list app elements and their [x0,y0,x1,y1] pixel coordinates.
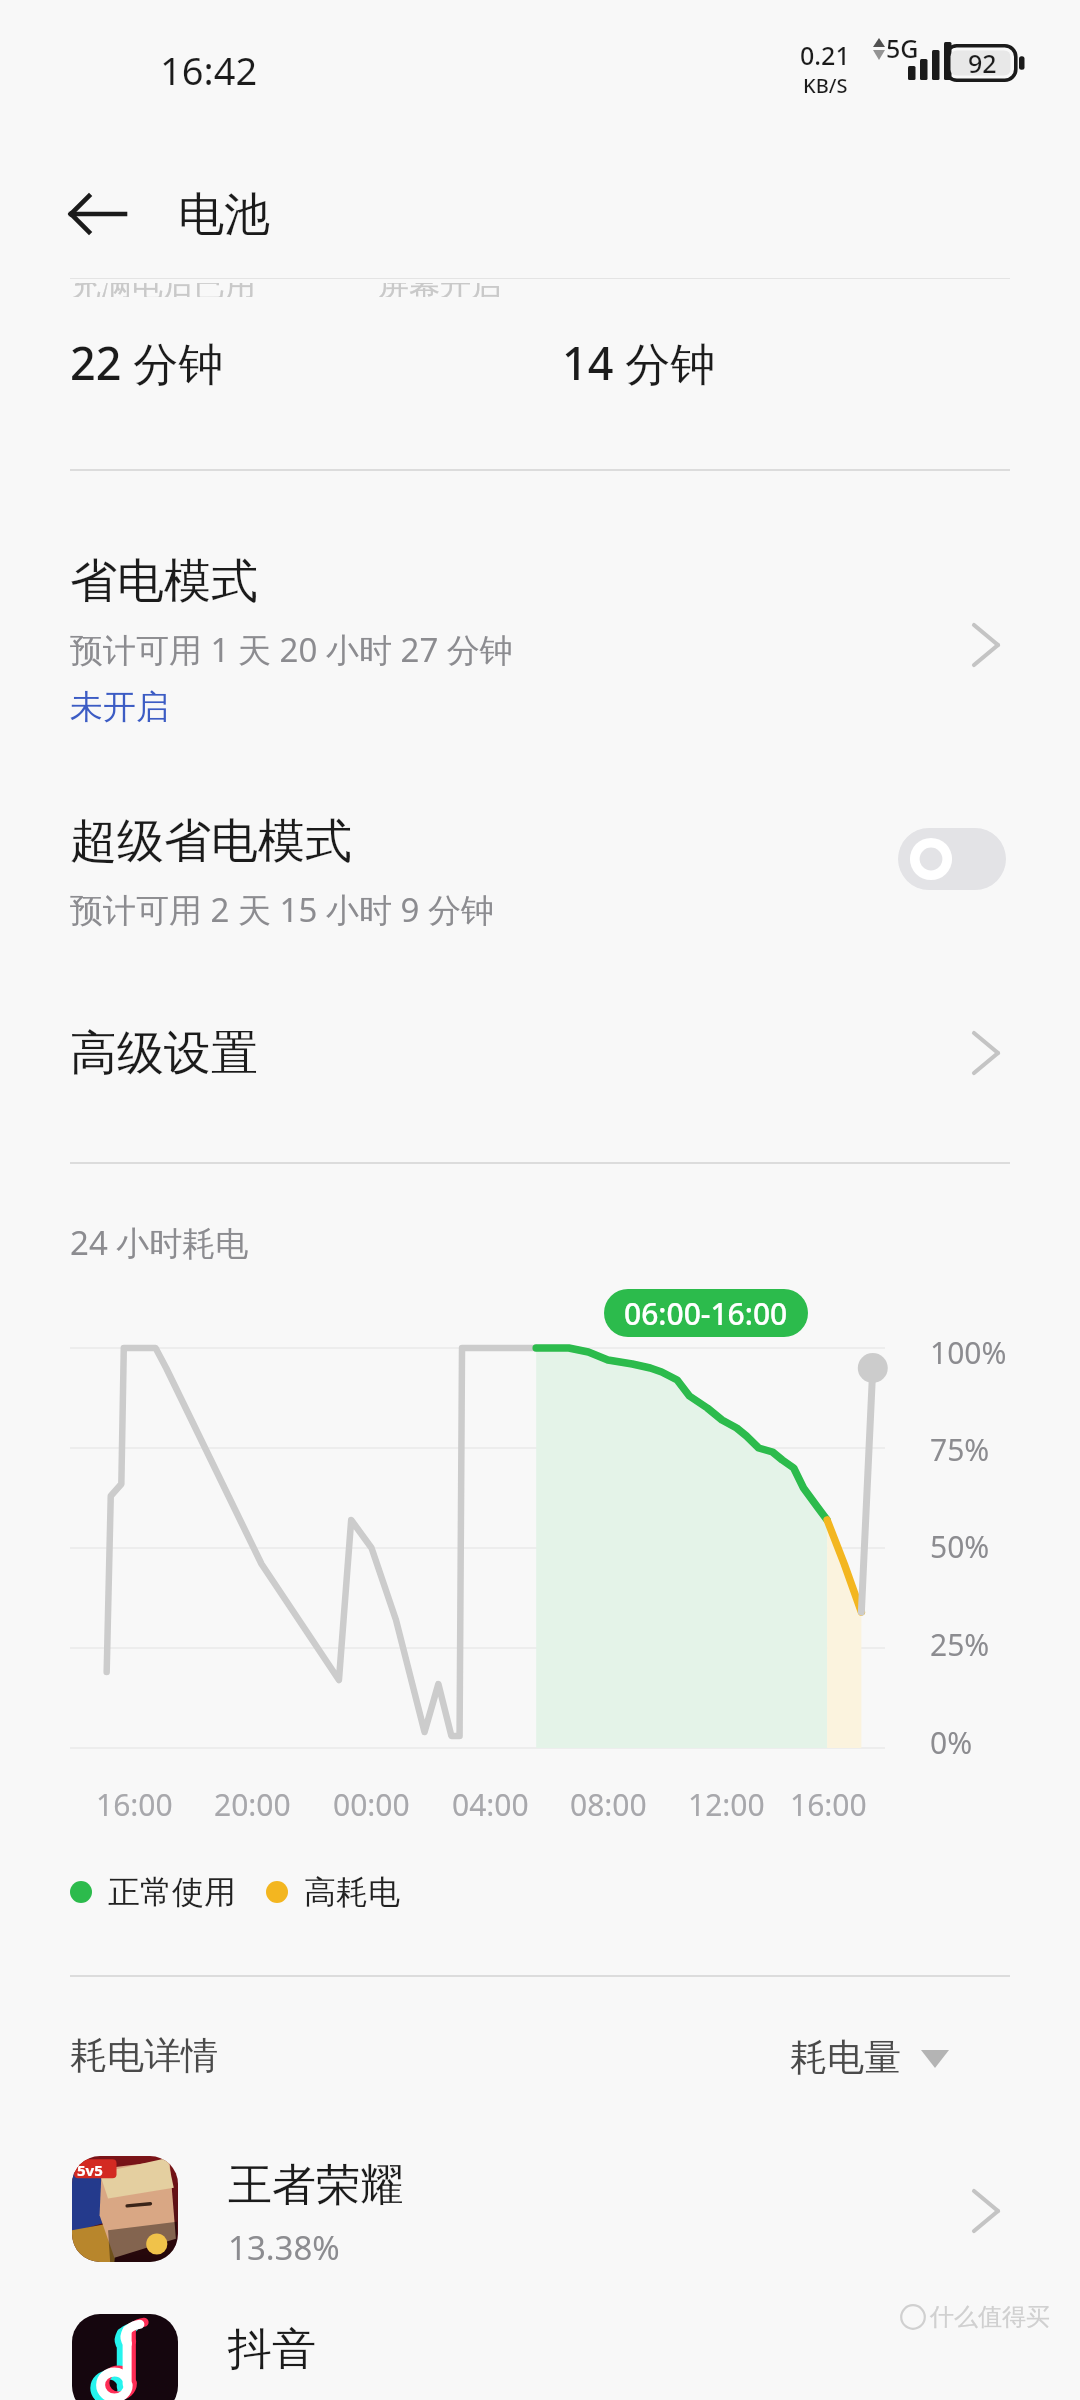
staticText: 预计可用 1 天 20 小时 27 分钟 [70,627,513,672]
staticText: 超级省电模式 [70,812,352,871]
staticText: 92 [968,46,997,80]
staticText: 屏幕开启 [378,283,502,297]
staticText: 未开启 [70,686,169,728]
staticText: 5v5 [77,2160,103,2180]
button[interactable]: 06:00-16:00 [604,1289,808,1337]
staticText: 14 分钟 [562,332,716,393]
button[interactable]: 超级省电模式 [0,790,1080,958]
staticText: 0.21 [800,38,850,72]
button[interactable]: 高级设置 [0,982,1080,1122]
staticText: 充满电后已用 [70,283,256,297]
staticText: 16:00 [96,1784,173,1825]
staticText: 5G [886,31,919,65]
button[interactable]: 耗电量 [790,2020,949,2094]
staticText: 20:00 [214,1784,291,1825]
button[interactable]: 返回 [46,162,150,266]
staticText: 省电模式 [70,552,258,611]
staticText: 04:00 [452,1784,529,1825]
staticText: 75% [930,1429,990,1470]
button[interactable]: 省电模式 [0,528,1080,752]
staticText: 预计可用 2 天 15 小时 9 分钟 [70,887,494,932]
button[interactable]: 5v5 [0,2130,1080,2288]
staticText: KB/S [803,72,848,99]
staticText: 高级设置 [70,1024,258,1083]
staticText: 50% [930,1526,990,1567]
staticText: 什么值得买 [930,2302,1050,2332]
staticText: 06:00-16:00 [624,1293,788,1334]
staticText: 100% [930,1332,1007,1373]
button[interactable]: 超级省电模式开关 [898,828,1006,890]
staticText: 00:00 [333,1784,410,1825]
staticText: 16:00 [790,1784,867,1825]
staticText: 24 小时耗电 [70,1220,249,1265]
staticText: 电池 [178,186,270,244]
staticText: 25% [930,1624,990,1665]
staticText: 12:00 [688,1784,765,1825]
staticText: 22 分钟 [70,332,224,393]
button[interactable]: 抖音 [0,2300,1080,2400]
staticText: 0% [930,1722,973,1763]
staticText: 13.38% [228,2225,340,2270]
staticText: 08:00 [570,1784,647,1825]
staticText: 耗电量 [790,2034,901,2081]
staticText: 16:42 [160,44,258,96]
staticText: 高耗电 [304,1872,400,1912]
staticText: 正常使用 [108,1872,236,1912]
staticText: 耗电详情 [70,2032,218,2079]
staticText: 王者荣耀 [228,2158,404,2213]
staticText: 抖音 [228,2322,316,2377]
